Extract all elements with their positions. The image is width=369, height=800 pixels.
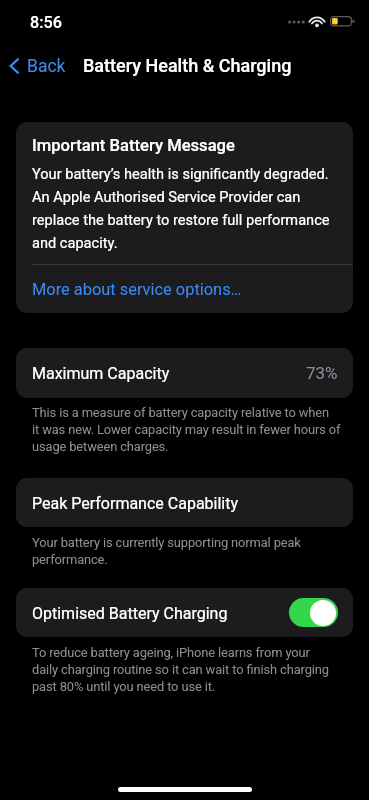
button[interactable]: Optimised Battery Charging — [16, 588, 353, 637]
button[interactable]: Optimised Battery Charging — [289, 598, 338, 627]
button[interactable]: More about service options… — [16, 264, 353, 313]
staticText: More about service options… — [32, 279, 242, 299]
staticText: Peak Performance Capability — [32, 493, 239, 513]
staticText: Back — [27, 55, 66, 76]
staticText: 8:56 — [30, 14, 62, 32]
staticText: Your battery is currently supporting nor… — [32, 533, 345, 567]
staticText: Your battery’s health is significantly d… — [32, 161, 337, 253]
staticText: 73% — [306, 363, 338, 383]
staticText: Optimised Battery Charging — [32, 603, 228, 623]
button[interactable]: Maximum Capacity — [16, 348, 353, 398]
staticText: Important Battery Message — [32, 134, 235, 155]
staticText: Battery Health & Charging — [83, 55, 292, 76]
staticText: To reduce battery ageing, iPhone learns … — [32, 643, 345, 694]
staticText: Maximum Capacity — [32, 363, 170, 383]
button[interactable]: Back — [0, 49, 74, 82]
staticText: This is a measure of battery capacity re… — [32, 403, 345, 454]
button[interactable]: Peak Performance Capability — [16, 478, 353, 527]
